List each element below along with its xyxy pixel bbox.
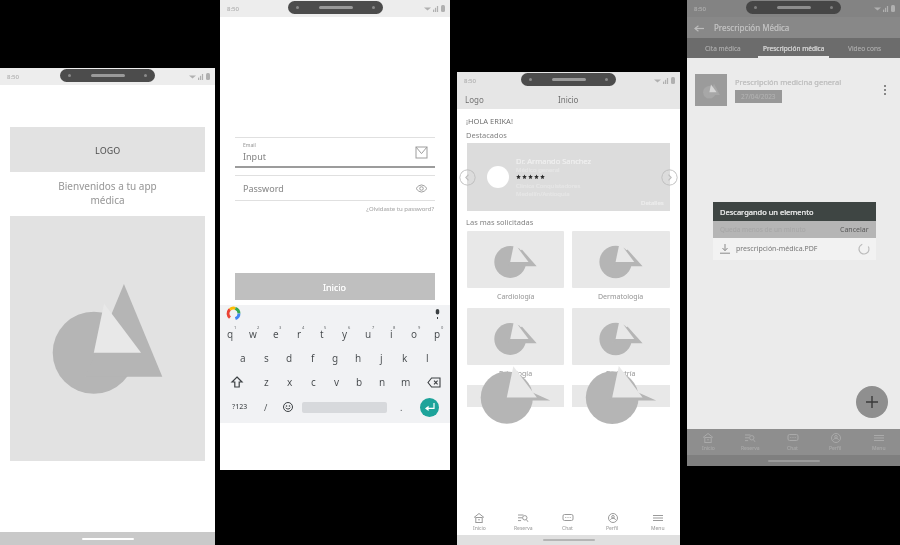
- staticText: 4: [302, 325, 305, 330]
- staticText: 27/04/2023: [741, 92, 776, 101]
- staticText: Las mas solicitadas: [466, 217, 534, 227]
- button[interactable]: Menu: [857, 429, 900, 455]
- staticText: Input: [243, 150, 266, 162]
- staticText: Perfil: [606, 525, 619, 532]
- button[interactable]: Psicología: [467, 308, 564, 379]
- button[interactable]: .: [390, 394, 412, 420]
- staticText: Prescripción médica: [763, 44, 825, 53]
- button[interactable]: Reserva: [501, 509, 545, 535]
- button[interactable]: d: [278, 346, 301, 370]
- button[interactable]: Chat: [545, 509, 590, 535]
- button[interactable]: Pediatría: [572, 308, 670, 379]
- staticText: d: [286, 351, 293, 365]
- button[interactable]: u: [358, 322, 381, 346]
- button[interactable]: m: [394, 370, 417, 394]
- button[interactable]: w: [243, 322, 266, 346]
- button[interactable]: i: [381, 322, 404, 346]
- staticText: Dermatología: [598, 292, 644, 302]
- button[interactable]: Shift: [220, 370, 254, 394]
- button[interactable]: Prescripción médica: [758, 38, 829, 58]
- button[interactable]: Chat: [771, 429, 814, 455]
- button[interactable]: /: [255, 394, 277, 420]
- staticText: Inicio: [702, 445, 715, 452]
- staticText: Descargando un elemento: [720, 207, 814, 217]
- button[interactable]: Dr. Armando Sanchez: [467, 143, 670, 211]
- button[interactable]: Perfil: [590, 509, 635, 535]
- button[interactable]: Inicio: [457, 509, 501, 535]
- staticText: 7: [372, 325, 375, 330]
- other: Email: [416, 147, 427, 158]
- button[interactable]: Backspace: [417, 370, 450, 394]
- button[interactable]: b: [348, 370, 371, 394]
- staticText: 3: [279, 325, 282, 330]
- staticText: 8:50: [7, 73, 19, 81]
- staticText: s: [264, 351, 269, 365]
- button[interactable]: Back: [693, 22, 705, 34]
- button[interactable]: prescripción-médica.PDF: [720, 238, 869, 260]
- staticText: k: [402, 351, 408, 365]
- staticText: z: [264, 375, 269, 389]
- button[interactable]: j: [370, 346, 393, 370]
- button[interactable]: l: [416, 346, 439, 370]
- staticText: Cita médica: [705, 44, 741, 53]
- button[interactable]: Detalles: [641, 199, 664, 207]
- button[interactable]: y: [335, 322, 358, 346]
- button[interactable]: Prescripción medicina general: [695, 68, 892, 112]
- button[interactable]: Password: [235, 175, 435, 201]
- staticText: 9: [418, 325, 421, 330]
- button[interactable]: k: [393, 346, 416, 370]
- staticText: b: [356, 375, 363, 389]
- button[interactable]: Inicio: [687, 429, 729, 455]
- button[interactable]: v: [325, 370, 348, 394]
- button[interactable]: c: [302, 370, 325, 394]
- button[interactable]: Emoji: [277, 394, 299, 420]
- button[interactable]: a: [231, 346, 255, 370]
- other: Show password: [416, 183, 427, 194]
- button[interactable]: Perfil: [814, 429, 857, 455]
- button[interactable]: x: [278, 370, 302, 394]
- button[interactable]: Next: [661, 169, 678, 186]
- staticText: 8:50: [694, 5, 706, 13]
- button[interactable]: t: [312, 322, 335, 346]
- staticText: ?123: [232, 402, 248, 412]
- staticText: p: [434, 327, 441, 341]
- button[interactable]: e: [266, 322, 289, 346]
- button[interactable]: Email: [235, 137, 435, 168]
- staticText: /: [264, 401, 268, 413]
- staticText: l: [426, 351, 429, 365]
- button[interactable]: q: [220, 322, 243, 346]
- button[interactable]: z: [254, 370, 278, 394]
- staticText: Pediatría: [606, 369, 636, 379]
- staticText: Clinica Conquistadores: [516, 182, 581, 190]
- button[interactable]: s: [255, 346, 278, 370]
- staticText: 8:50: [227, 5, 239, 13]
- button[interactable]: n: [371, 370, 394, 394]
- staticText: g: [332, 351, 339, 365]
- button[interactable]: p: [427, 322, 450, 346]
- button[interactable]: Video cons: [829, 38, 900, 58]
- button[interactable]: Menu: [635, 509, 680, 535]
- button[interactable]: h: [347, 346, 370, 370]
- button[interactable]: g: [324, 346, 347, 370]
- button[interactable]: f: [301, 346, 324, 370]
- button[interactable]: Dermatología: [572, 231, 670, 302]
- button[interactable]: Inicio: [235, 273, 435, 300]
- button[interactable]: ¿Olvidaste tu password?: [220, 205, 434, 213]
- staticText: Reserva: [514, 525, 533, 532]
- button[interactable]: Cita médica: [687, 38, 758, 58]
- button[interactable]: More options: [878, 83, 892, 97]
- button[interactable]: Logo: [465, 94, 484, 105]
- button[interactable]: LOGO: [10, 127, 205, 172]
- button[interactable]: Previous: [459, 169, 476, 186]
- button[interactable]: r: [289, 322, 312, 346]
- button[interactable]: Add: [856, 386, 888, 418]
- button[interactable]: Cancelar: [840, 225, 869, 235]
- button[interactable]: Enter: [420, 398, 439, 417]
- button[interactable]: o: [404, 322, 427, 346]
- staticText: i: [390, 327, 393, 341]
- staticText: f: [311, 351, 315, 365]
- button[interactable]: Reserva: [729, 429, 771, 455]
- button[interactable]: Cardiología: [467, 231, 564, 302]
- button[interactable]: ?123: [224, 394, 255, 420]
